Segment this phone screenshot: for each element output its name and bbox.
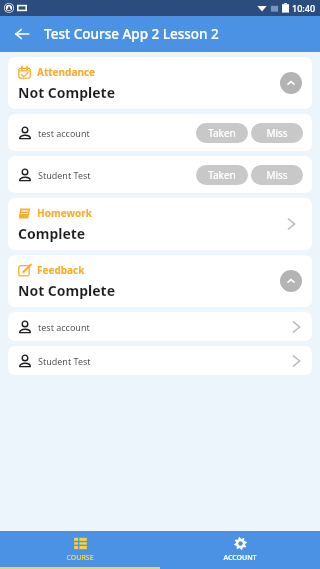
staticText: COURSE [66,553,94,563]
button[interactable]: Open [280,213,302,235]
staticText: Not Complete [18,83,116,102]
button[interactable]: Collapse [280,72,302,94]
button[interactable]: Attendance [8,57,312,109]
staticText: ACCOUNT [223,553,257,563]
staticText: Complete [18,224,86,243]
button[interactable]: Miss [251,165,303,185]
staticText: Attendance [37,65,96,79]
button[interactable]: Feedback [8,255,312,307]
staticText: Student Test [38,355,91,367]
button[interactable]: Taken [196,123,248,143]
button[interactable]: Miss [251,123,303,143]
button[interactable]: Collapse [280,270,302,292]
button[interactable]: Taken [196,165,248,185]
staticText: test account [38,127,90,139]
staticText: Miss [266,168,288,182]
staticText: Taken [208,168,236,182]
button[interactable]: ACCOUNT [160,531,320,567]
staticText: Not Complete [18,281,116,300]
button[interactable]: test account [8,114,312,151]
button[interactable]: Student Test [8,346,312,375]
button[interactable]: Homework [8,198,312,250]
staticText: test account [38,321,90,333]
staticText: Homework [37,206,92,220]
staticText: Taken [208,126,236,140]
staticText: 10:40 [292,2,316,14]
staticText: Student Test [38,169,91,181]
button[interactable]: test account [8,312,312,341]
button[interactable]: Back [8,20,36,48]
staticText: Test Course App 2 Lesson 2 [44,25,219,43]
button[interactable]: COURSE [0,531,160,567]
button[interactable]: Student Test [8,156,312,193]
staticText: Miss [266,126,288,140]
staticText: Feedback [37,263,85,277]
